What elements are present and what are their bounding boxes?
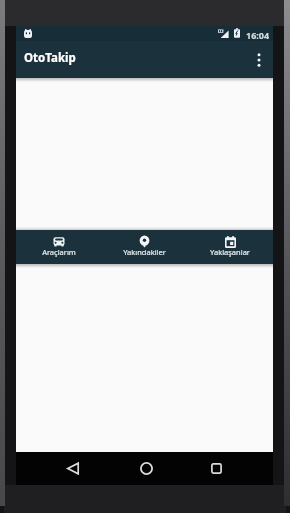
staticText: Yaklaşanlar: [210, 247, 250, 257]
staticText: Araçlarım: [42, 247, 76, 257]
button[interactable]: Yakındakiler: [101, 230, 187, 264]
staticText: Yakındakiler: [123, 247, 166, 257]
staticText: 16:04: [246, 29, 270, 41]
button[interactable]: Araçlarım: [16, 230, 101, 264]
button[interactable]: Yaklaşanlar: [187, 230, 273, 264]
button[interactable]: [201, 452, 232, 485]
button[interactable]: [57, 452, 88, 485]
button[interactable]: [245, 41, 273, 78]
button[interactable]: [131, 452, 162, 485]
staticText: OtoTakip: [24, 50, 76, 66]
